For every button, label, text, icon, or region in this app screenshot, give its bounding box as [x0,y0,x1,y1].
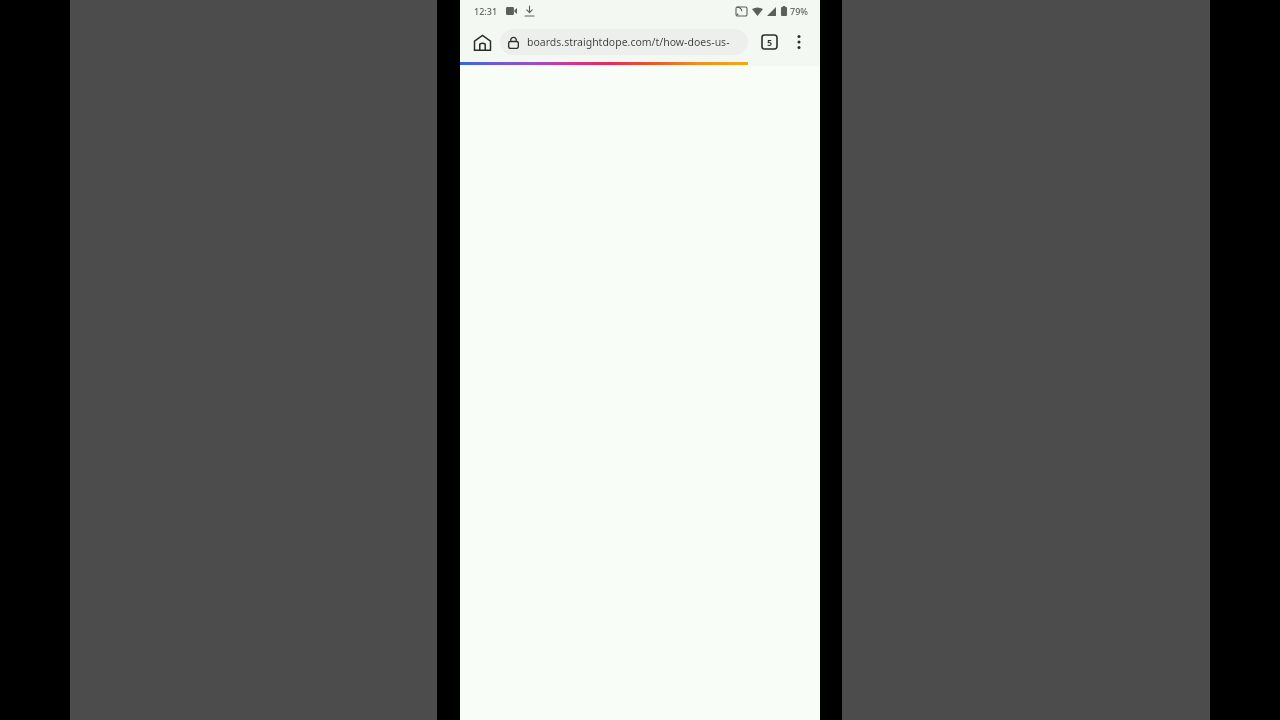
button[interactable]: Home [468,28,496,56]
staticText: 5 [767,36,773,48]
button[interactable]: Tabs, 5 open [754,27,784,57]
button[interactable]: boards.straightdope.com/t/how-does-us-mi… [500,29,748,55]
staticText: 12:31 [474,5,498,17]
staticText: boards.straightdope.com/t/how-does-us-mi… [527,35,740,49]
button[interactable]: More options [784,27,814,57]
staticText: 79% [790,5,808,17]
